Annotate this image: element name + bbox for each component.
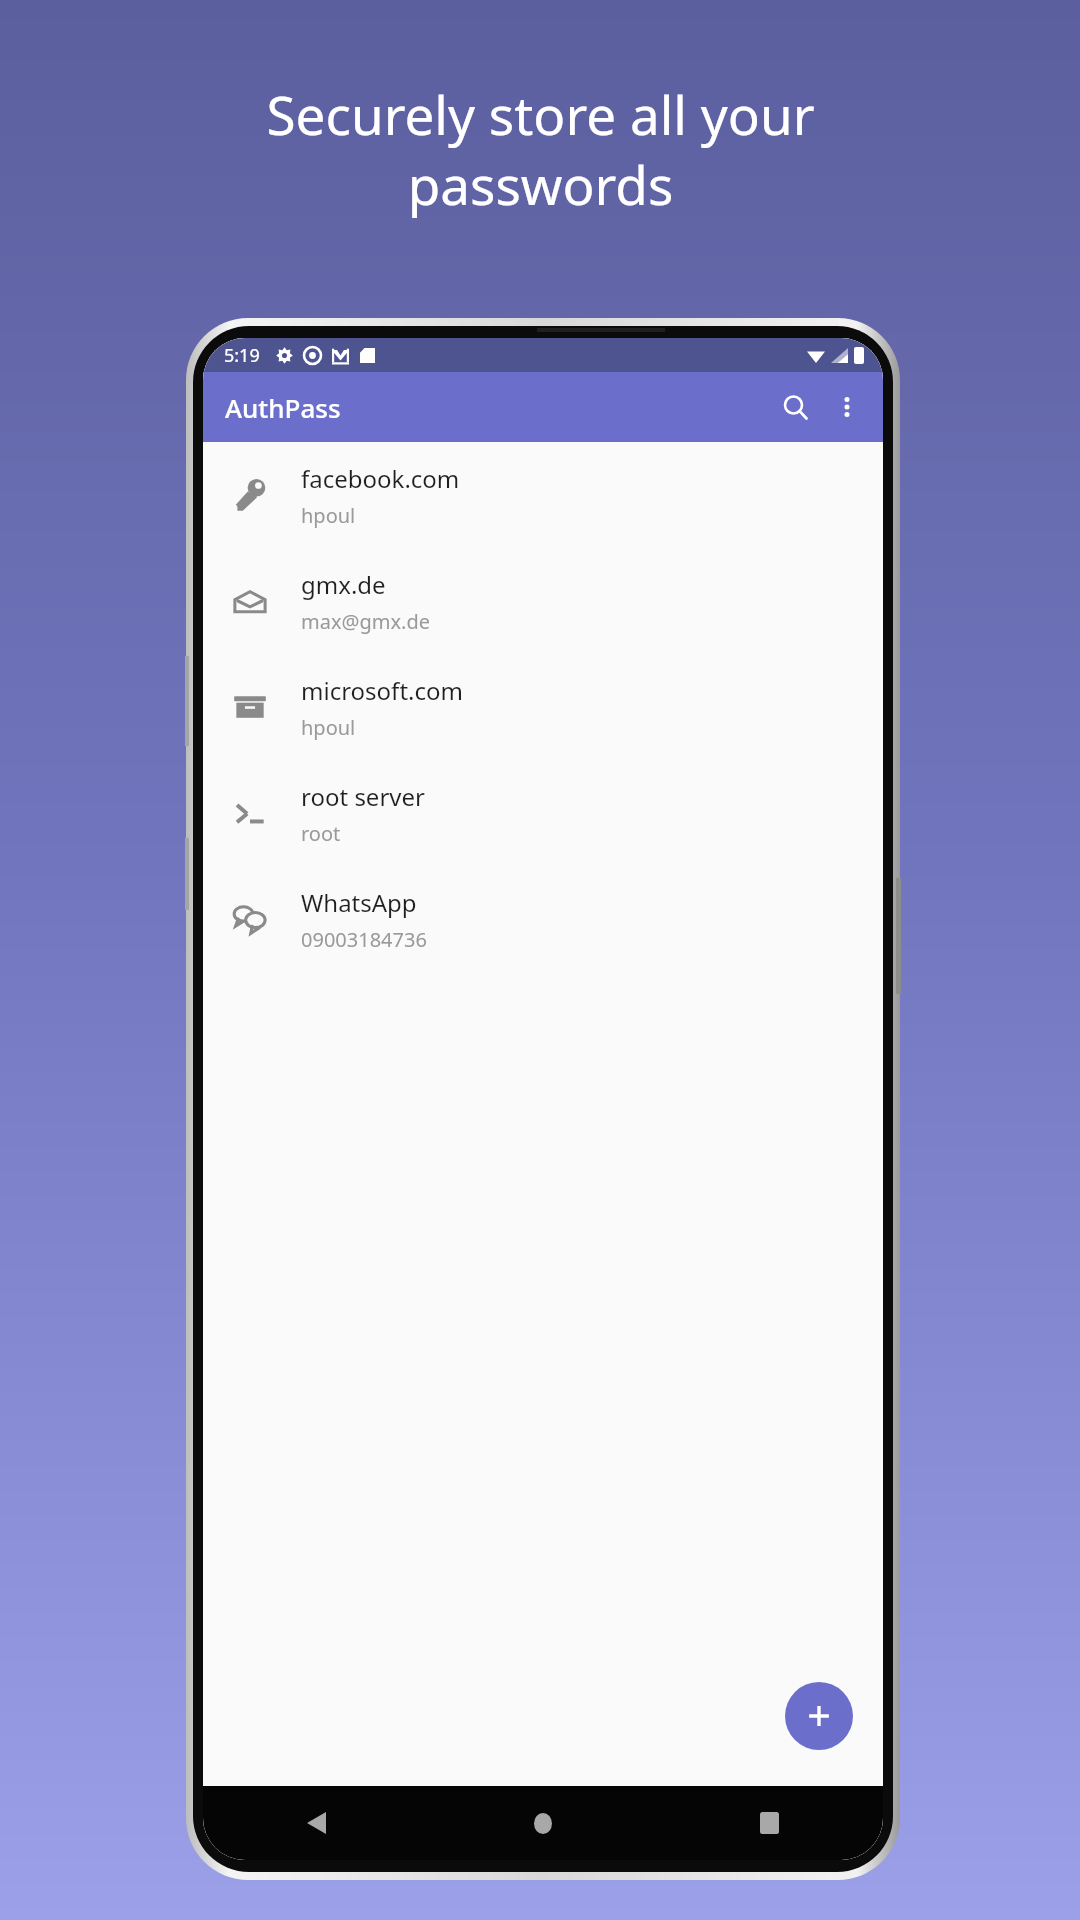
staticText: AuthPass <box>225 390 341 425</box>
button[interactable]: WhatsApp <box>203 866 883 972</box>
button[interactable]: Search <box>769 381 821 433</box>
button[interactable]: Add entry <box>785 1682 853 1750</box>
button[interactable]: More options <box>821 381 873 433</box>
staticText: hpoul <box>301 502 356 529</box>
button[interactable]: Home <box>429 1786 656 1860</box>
button[interactable]: Recent apps <box>656 1786 883 1860</box>
staticText: gmx.de <box>301 568 386 601</box>
staticText: hpoul <box>301 714 356 741</box>
staticText: microsoft.com <box>301 674 463 707</box>
button[interactable]: Back <box>203 1786 429 1860</box>
staticText: root <box>301 820 341 847</box>
button[interactable]: root server <box>203 760 883 866</box>
staticText: 5:19 <box>224 343 260 368</box>
staticText: facebook.com <box>301 462 460 495</box>
staticText: 09003184736 <box>301 926 427 953</box>
staticText: Securely store all your passwords <box>266 78 815 220</box>
button[interactable]: facebook.com <box>203 442 883 548</box>
staticText: root server <box>301 780 425 813</box>
staticText: WhatsApp <box>301 886 417 919</box>
button[interactable]: microsoft.com <box>203 654 883 760</box>
button[interactable]: gmx.de <box>203 548 883 654</box>
staticText: max@gmx.de <box>301 608 430 635</box>
